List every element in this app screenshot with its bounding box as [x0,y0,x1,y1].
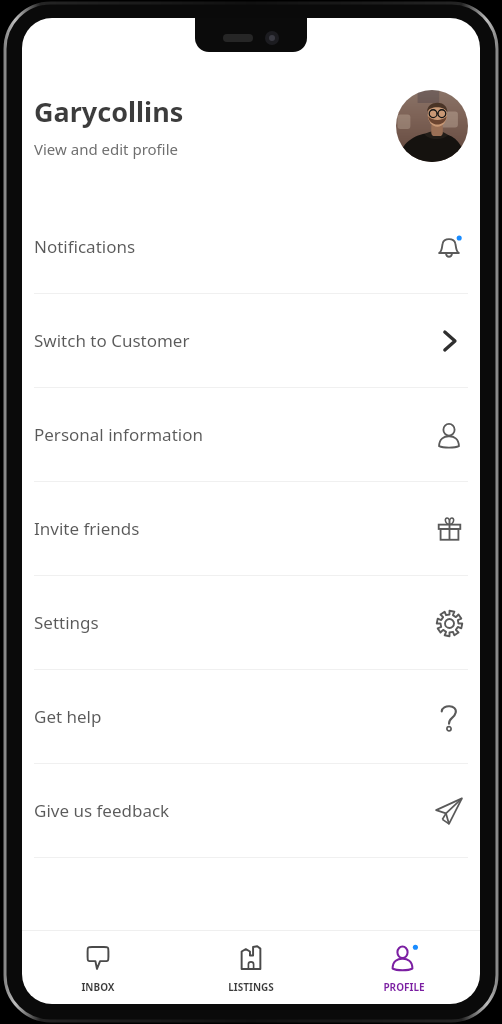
button[interactable]: Invite friends [22,482,480,575]
other: Get help [435,703,463,731]
other: Listings [238,945,264,971]
button[interactable]: Give us feedback [22,764,480,857]
staticText: Get help [34,705,432,728]
other: Inbox [85,945,111,971]
button[interactable]: Inbox [22,931,174,1004]
button[interactable]: Settings [22,576,480,669]
staticText: View and edit profile [34,139,178,159]
staticText: Invite friends [34,517,432,540]
staticText: Give us feedback [34,799,432,822]
button[interactable]: Personal information [22,388,480,481]
other: Notifications [434,232,464,262]
button[interactable]: Profile photo [396,90,468,162]
staticText: INBOX [81,980,115,994]
staticText: Notifications [34,235,432,258]
staticText: Personal information [34,423,432,446]
button[interactable]: Garycollins [22,90,480,162]
button[interactable]: Listings [174,931,327,1004]
staticText: Settings [34,611,432,634]
other: Personal information [435,421,463,449]
staticText: Switch to Customer [34,329,432,352]
other: Give us feedback [434,796,464,826]
staticText: Garycollins [34,93,184,130]
button[interactable]: Switch to Customer [22,294,480,387]
other: Invite friends [436,516,463,543]
staticText: LISTINGS [228,980,274,994]
button[interactable]: Profile [327,931,480,1004]
other: Switch to Customer [434,326,464,356]
staticText: PROFILE [383,980,425,994]
button[interactable]: Notifications [22,200,480,293]
other: Profile [389,943,419,973]
other: Settings [435,609,464,638]
button[interactable]: Get help [22,670,480,763]
